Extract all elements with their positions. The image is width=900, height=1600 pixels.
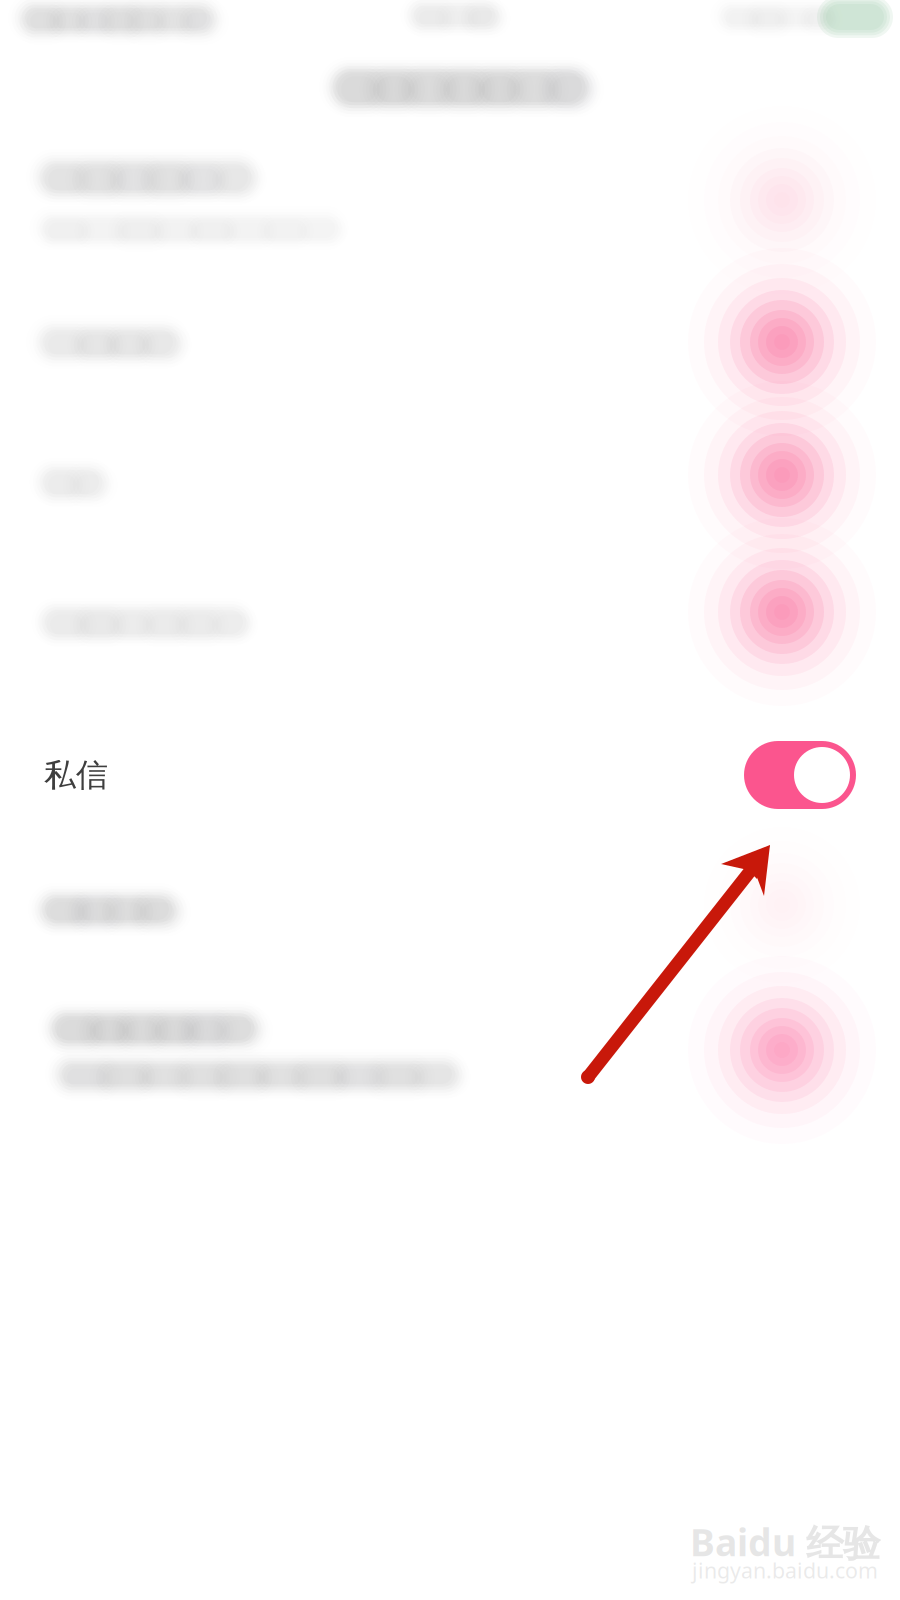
button[interactable]: 私信 <box>0 0 900 1600</box>
staticText: 私信 <box>44 755 108 795</box>
staticText: jingyan.baidu.com <box>692 1556 878 1584</box>
staticText: Baidu 经验 <box>690 1517 880 1567</box>
